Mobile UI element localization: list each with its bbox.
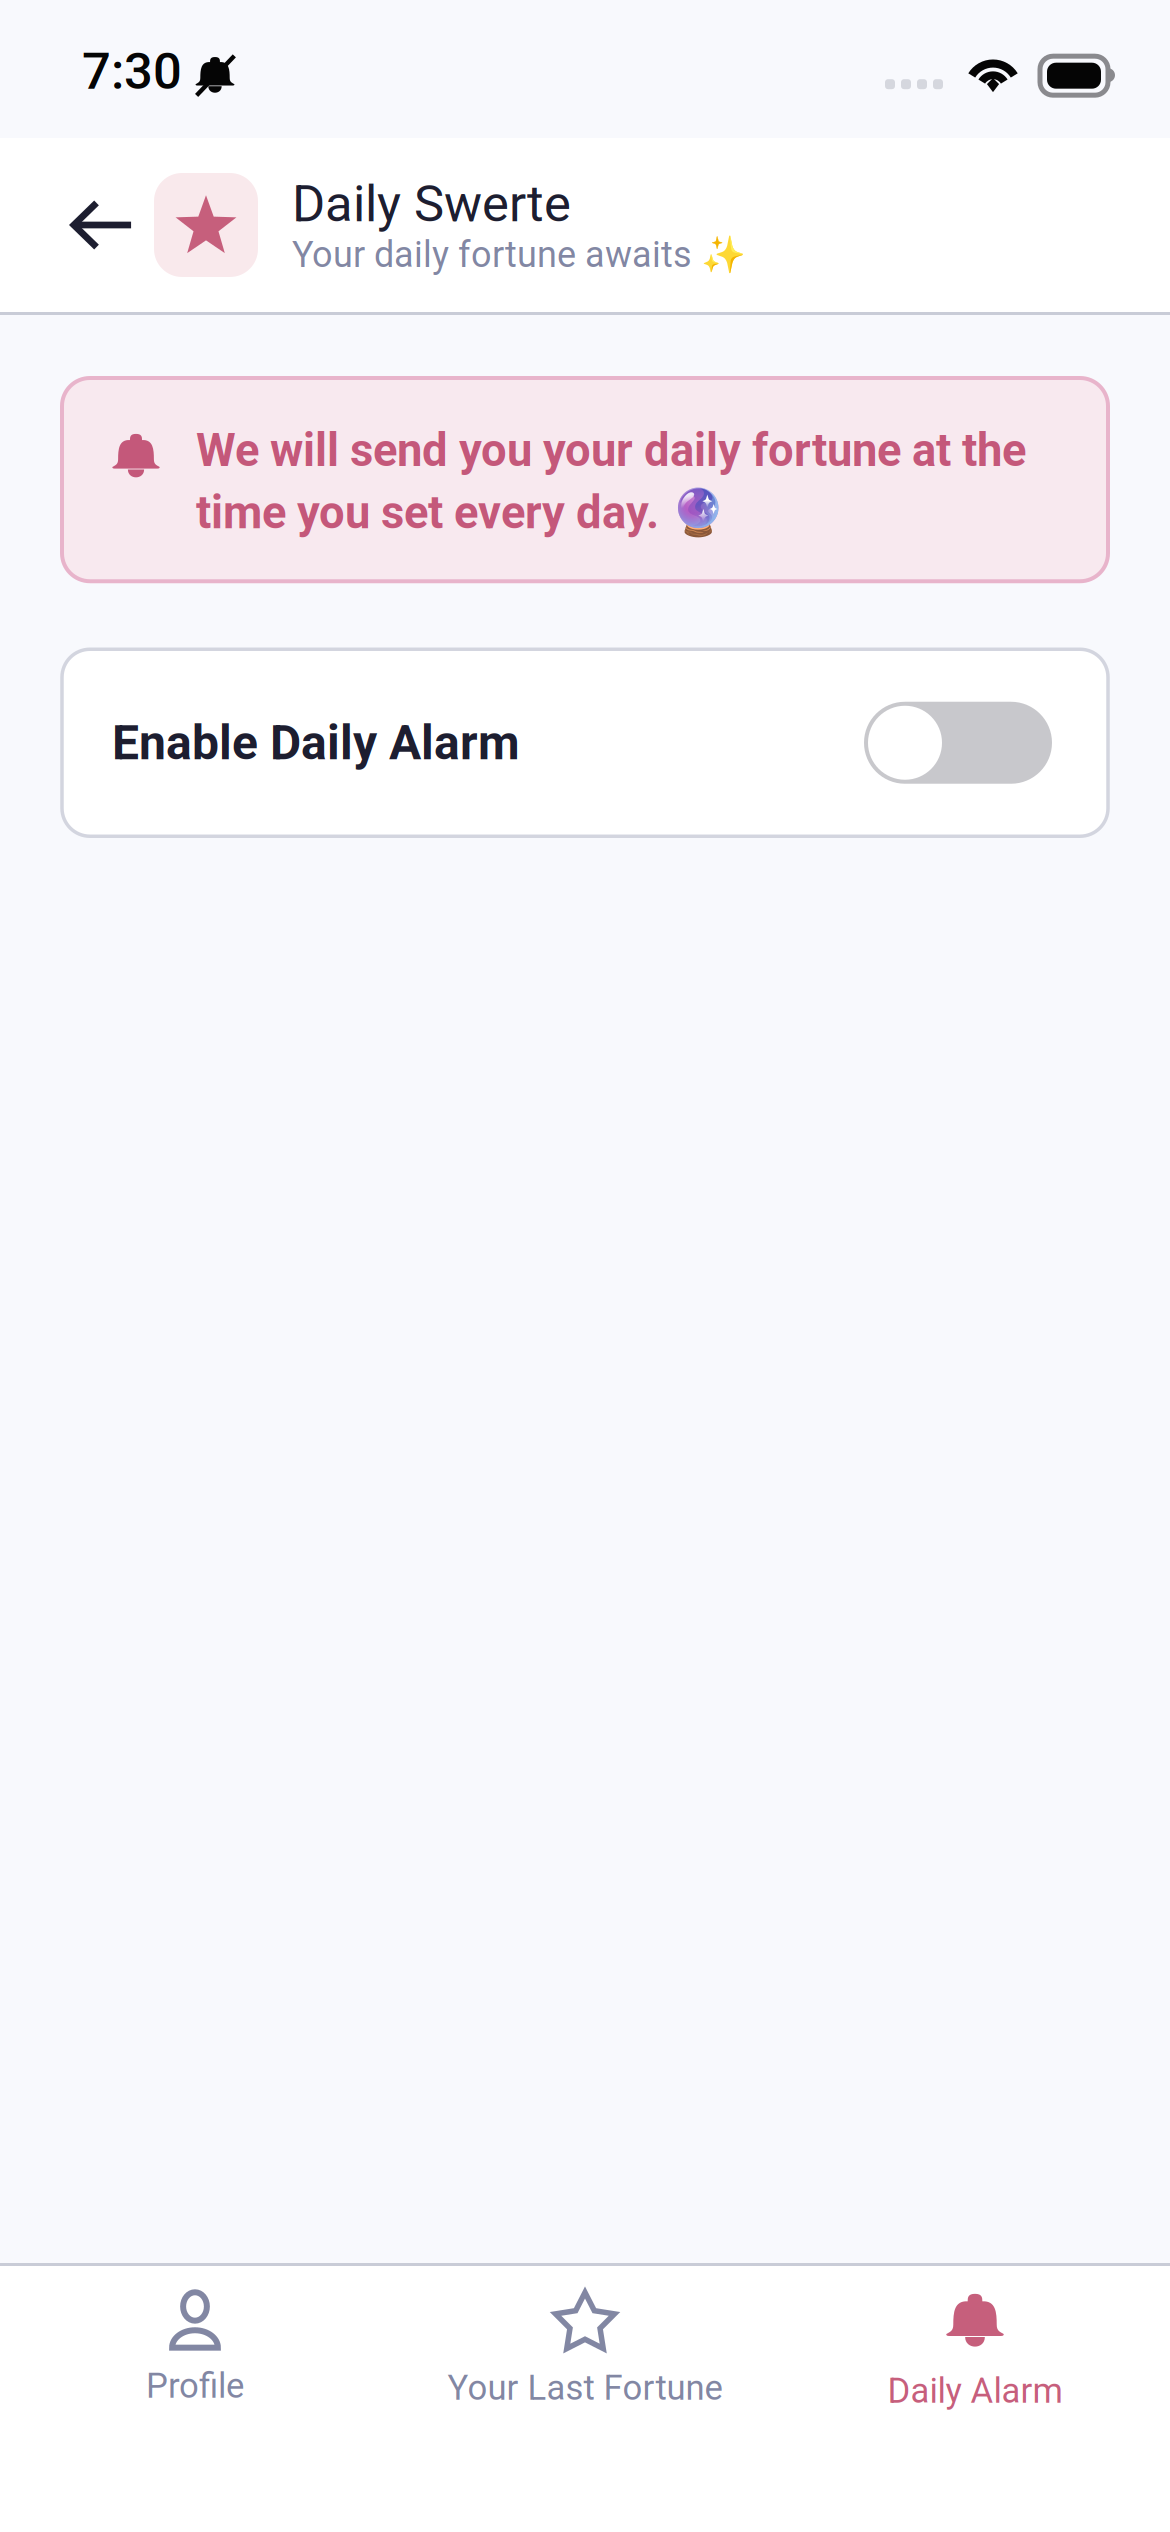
staticText: We will send you your daily fortune at t…: [196, 424, 1026, 539]
staticText: Daily Alarm: [887, 2371, 1062, 2411]
button[interactable]: Enable Daily Alarm: [62, 649, 1108, 836]
button[interactable]: Back: [48, 172, 154, 278]
staticText: Profile: [146, 2366, 244, 2406]
staticText: 7:30: [82, 42, 182, 101]
staticText: Your Last Fortune: [447, 2368, 722, 2408]
staticText: Daily Swerte: [292, 174, 571, 234]
button[interactable]: Your Last Fortune: [390, 2266, 780, 2432]
staticText: Enable Daily Alarm: [112, 715, 520, 771]
button[interactable]: Daily Alarm: [780, 2266, 1170, 2432]
staticText: Your daily fortune awaits ✨: [292, 234, 746, 276]
button[interactable]: Profile: [0, 2266, 390, 2432]
